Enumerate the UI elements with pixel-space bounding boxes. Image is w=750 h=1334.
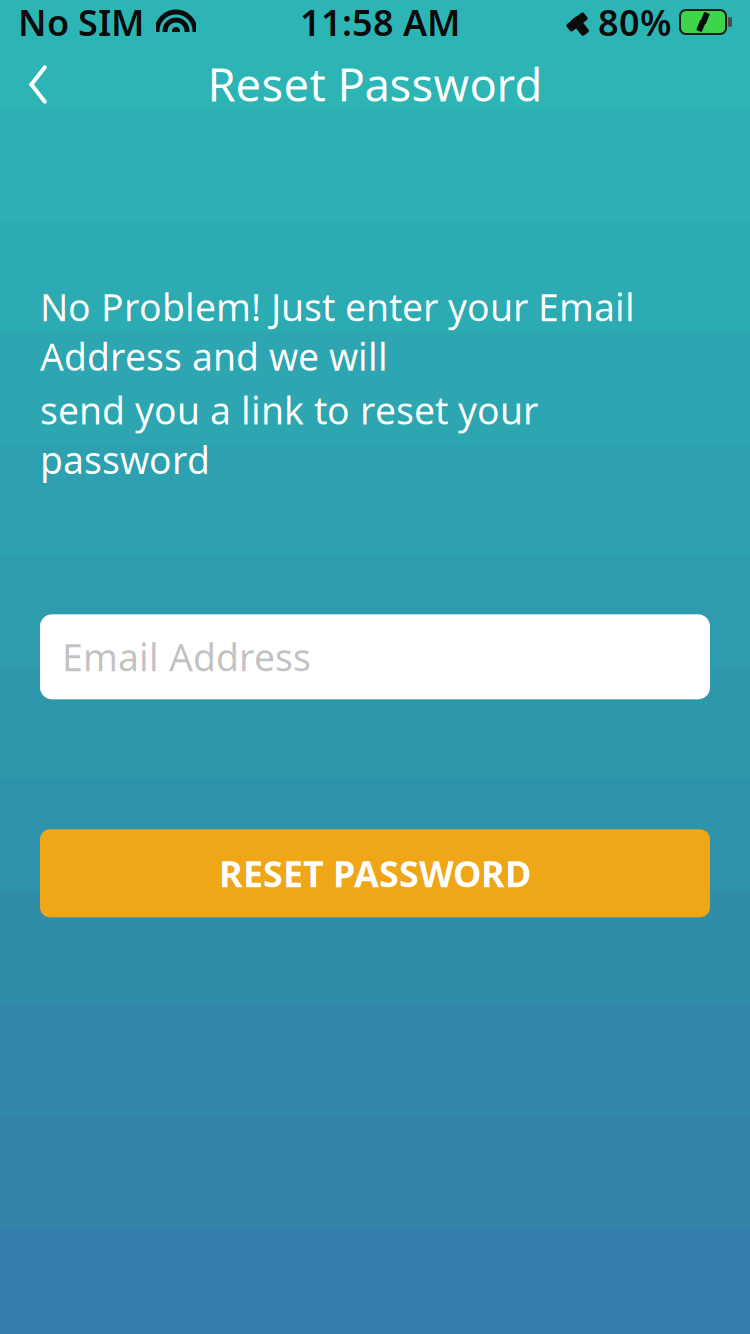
staticText: No Problem! Just enter your Email Addres… — [40, 282, 635, 381]
staticText: 80% — [598, 0, 672, 46]
button[interactable]: RESET PASSWORD — [40, 829, 710, 917]
staticText: Email Address — [62, 632, 311, 682]
staticText: RESET PASSWORD — [219, 849, 531, 897]
button[interactable]: Back — [0, 46, 76, 122]
button[interactable]: Email Address — [40, 614, 710, 699]
staticText: 11:58 AM — [300, 0, 460, 46]
staticText: No SIM — [18, 0, 144, 46]
staticText: send you a link to reset your password — [40, 385, 538, 484]
staticText: Reset Password — [207, 54, 542, 114]
